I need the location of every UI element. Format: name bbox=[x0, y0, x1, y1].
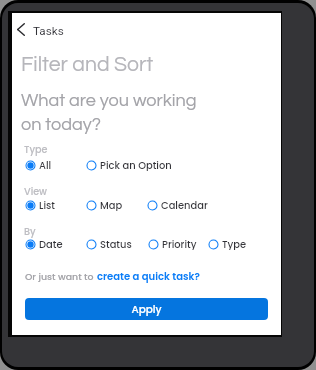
button[interactable]: Date bbox=[25, 238, 63, 250]
button[interactable]: Pick an Option bbox=[86, 159, 172, 171]
button[interactable]: Status bbox=[86, 238, 132, 250]
button[interactable]: Apply bbox=[25, 298, 268, 320]
staticText: What are you working on today? bbox=[21, 91, 197, 133]
staticText: Map bbox=[100, 199, 123, 211]
staticText: Pick an Option bbox=[100, 159, 172, 171]
staticText: Apply bbox=[131, 302, 162, 317]
staticText: By bbox=[24, 225, 36, 238]
staticText: Status bbox=[100, 238, 132, 250]
staticText: Type bbox=[24, 143, 48, 156]
button[interactable]: Back bbox=[11, 19, 31, 39]
staticText: View bbox=[24, 185, 48, 198]
staticText: Filter and Sort bbox=[21, 54, 154, 76]
button[interactable]: Calendar bbox=[147, 199, 208, 211]
staticText: Type bbox=[222, 238, 247, 250]
button[interactable]: All bbox=[25, 159, 52, 171]
staticText: Calendar bbox=[161, 199, 208, 211]
staticText: Priority bbox=[162, 238, 197, 250]
staticText: All bbox=[39, 159, 52, 171]
button[interactable]: Tasks bbox=[33, 24, 64, 38]
staticText: Tasks bbox=[33, 24, 64, 38]
button[interactable]: Type bbox=[208, 238, 247, 250]
staticText: List bbox=[39, 199, 55, 211]
button[interactable]: List bbox=[25, 199, 55, 211]
staticText: Date bbox=[39, 238, 63, 250]
button[interactable]: Map bbox=[86, 199, 123, 211]
staticText: Or just want to bbox=[25, 270, 97, 283]
button[interactable]: create a quick task? bbox=[97, 269, 200, 283]
button[interactable]: Priority bbox=[148, 238, 197, 250]
